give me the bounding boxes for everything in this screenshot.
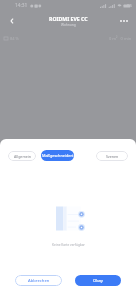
button[interactable]: Maßgeschneidert [41,150,74,161]
staticText: Wohnung [61,23,76,27]
staticText: ROIDMI EVE CC [49,15,88,22]
staticText: Okay [93,278,103,284]
button[interactable]: Okay [75,275,121,286]
staticText: Abbrechen [28,278,50,284]
button[interactable]: Szenen [96,151,128,161]
staticText: Allgemein [14,154,31,159]
staticText: 84 % [10,36,19,41]
staticText: 85 [127,3,132,9]
button[interactable]: Abbrechen [15,275,62,286]
button[interactable]: Allgemein [8,151,36,161]
staticText: 14:31 [15,2,28,9]
staticText: Keine Karte verfügbar [52,243,85,247]
button[interactable]: Back [0,9,24,33]
button[interactable]: More options [112,9,136,33]
staticText: 0 m² 0 min [109,36,132,41]
staticText: Szenen [106,154,119,159]
staticText: Maßgeschneidert [42,153,74,158]
